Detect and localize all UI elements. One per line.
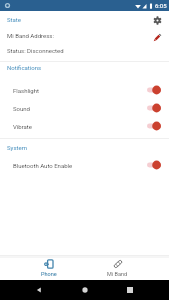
button[interactable]: Back [32, 283, 46, 297]
staticText: Flashlight [13, 87, 39, 94]
staticText: Vibrate [13, 123, 32, 130]
button[interactable]: Phone [14, 255, 83, 280]
staticText: Notifications [7, 64, 42, 71]
button[interactable]: Sound [0, 99, 169, 117]
button[interactable]: Edit Mi Band address [150, 30, 164, 44]
staticText: System [7, 144, 27, 151]
button[interactable]: Home [78, 283, 92, 297]
button[interactable]: Bluetooth Auto Enable [0, 156, 169, 174]
button[interactable]: Recents [123, 283, 137, 297]
button[interactable]: Flashlight [0, 81, 169, 99]
button[interactable]: Vibrate [0, 117, 169, 135]
staticText: Mi Band [107, 271, 128, 277]
staticText: Phone [41, 271, 57, 277]
button[interactable]: Settings [150, 13, 164, 27]
button[interactable]: Mi Band Address: [0, 28, 169, 58]
staticText: Status: Disconnected [7, 47, 64, 54]
staticText: Mi Band Address: [7, 32, 54, 39]
staticText: Bluetooth Auto Enable [13, 162, 73, 169]
staticText: Sound [13, 105, 30, 112]
staticText: State [7, 16, 21, 23]
staticText: 6:05 [155, 2, 167, 9]
button[interactable]: Mi Band [83, 255, 152, 280]
